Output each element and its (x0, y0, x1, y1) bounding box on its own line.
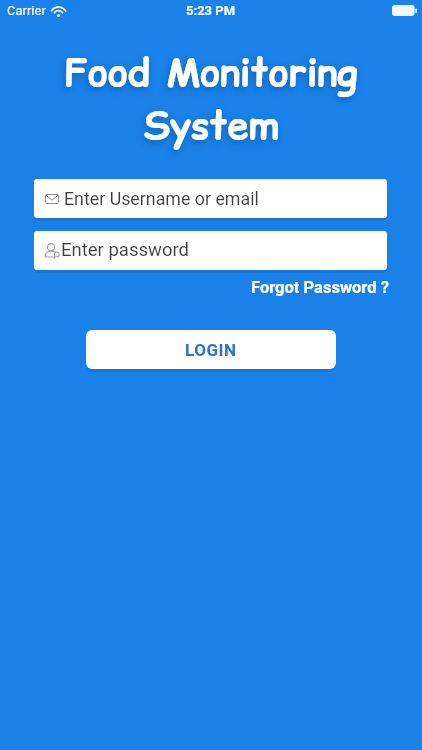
staticText: Forgot Password ? (251, 278, 389, 297)
staticText: Carrier (7, 3, 46, 18)
staticText: System (0, 99, 422, 152)
button[interactable]: Enter password (34, 231, 387, 270)
staticText: LOGIN (185, 340, 237, 360)
button[interactable]: Forgot Password ? (251, 278, 389, 297)
button[interactable]: Enter Username or email (34, 179, 387, 218)
staticText: Enter password (61, 239, 189, 261)
staticText: Food Monitoring (0, 46, 422, 99)
staticText: Enter Username or email (64, 188, 259, 209)
staticText: 5:23 PM (186, 3, 236, 18)
button[interactable]: LOGIN (86, 330, 336, 369)
